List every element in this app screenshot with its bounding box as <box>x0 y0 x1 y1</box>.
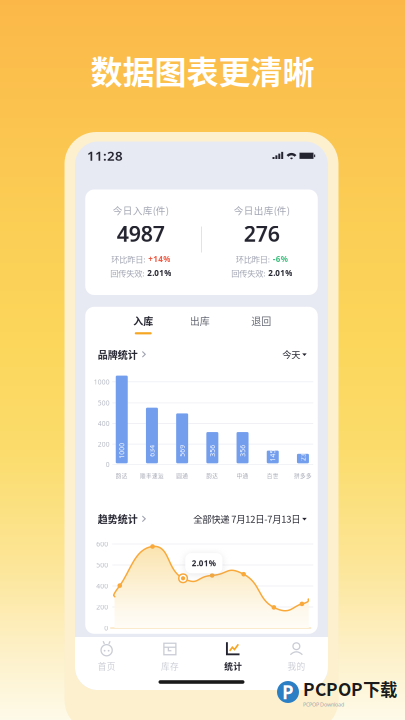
staticText: 回传失效: <box>231 267 265 279</box>
staticText: 今天 <box>282 347 300 361</box>
staticText: 0 <box>104 624 108 632</box>
staticText: 韵达 <box>206 471 218 479</box>
staticText: 品牌统计 <box>98 347 138 362</box>
staticText: 库存 <box>161 660 179 672</box>
staticText: 出库 <box>190 314 210 328</box>
staticText: 1000 <box>94 377 110 386</box>
staticText: 200 <box>98 440 110 449</box>
staticText: -6% <box>273 254 288 264</box>
staticText: P <box>282 680 294 704</box>
button[interactable]: 库存 <box>138 639 201 673</box>
button[interactable]: 入库 <box>121 312 165 340</box>
staticText: 拼多多 <box>294 471 312 479</box>
staticText: PCPOP下载 <box>303 676 397 701</box>
staticText: 0 <box>106 460 110 469</box>
staticText: 356 <box>206 446 218 455</box>
staticText: 今日出库(件) <box>234 203 290 217</box>
staticText: +14% <box>148 254 170 264</box>
staticText: 2.01% <box>147 268 171 278</box>
staticText: PCPOP Download <box>303 701 344 708</box>
staticText: 500 <box>98 398 110 407</box>
button[interactable]: 首页 <box>75 639 138 673</box>
staticText: 356 <box>237 446 249 455</box>
staticText: 2.01% <box>192 558 216 568</box>
staticText: 634 <box>146 446 158 455</box>
staticText: 退回 <box>251 314 271 328</box>
staticText: 4987 <box>117 219 165 248</box>
staticText: 2.01% <box>268 268 292 278</box>
staticText: 环比昨日: <box>111 253 145 265</box>
button[interactable]: 出库 <box>178 312 222 340</box>
staticText: 顺丰速运 <box>140 471 164 479</box>
staticText: 首页 <box>98 660 116 672</box>
staticText: 400 <box>96 582 108 590</box>
staticText: 1000 <box>114 446 130 455</box>
button[interactable]: 我的 <box>265 639 328 673</box>
staticText: 圆通 <box>176 471 188 479</box>
staticText: 我的 <box>287 660 305 672</box>
staticText: 145 <box>267 451 279 460</box>
staticText: 入库 <box>133 314 153 328</box>
staticText: 数据图表更清晰 <box>90 47 314 93</box>
staticText: 11:28 <box>87 147 123 164</box>
staticText: 统计 <box>224 660 242 672</box>
staticText: 环比昨日: <box>236 253 270 265</box>
staticText: 23 <box>299 453 307 461</box>
staticText: 韵达 <box>116 471 128 479</box>
staticText: 500 <box>96 561 108 569</box>
staticText: 200 <box>96 603 108 611</box>
button[interactable]: 统计 <box>201 639 265 673</box>
staticText: 回传失效: <box>110 267 144 279</box>
button[interactable]: 退回 <box>239 312 283 340</box>
staticText: 趋势统计 <box>98 512 138 526</box>
staticText: 400 <box>98 419 110 428</box>
staticText: 今日入库(件) <box>113 203 169 217</box>
staticText: 中通 <box>237 471 249 479</box>
staticText: 全部快递 7月12日-7月13日 <box>193 512 300 525</box>
staticText: 276 <box>244 219 280 248</box>
staticText: 600 <box>96 540 108 548</box>
staticText: 百世 <box>267 471 279 479</box>
staticText: 569 <box>176 446 188 455</box>
